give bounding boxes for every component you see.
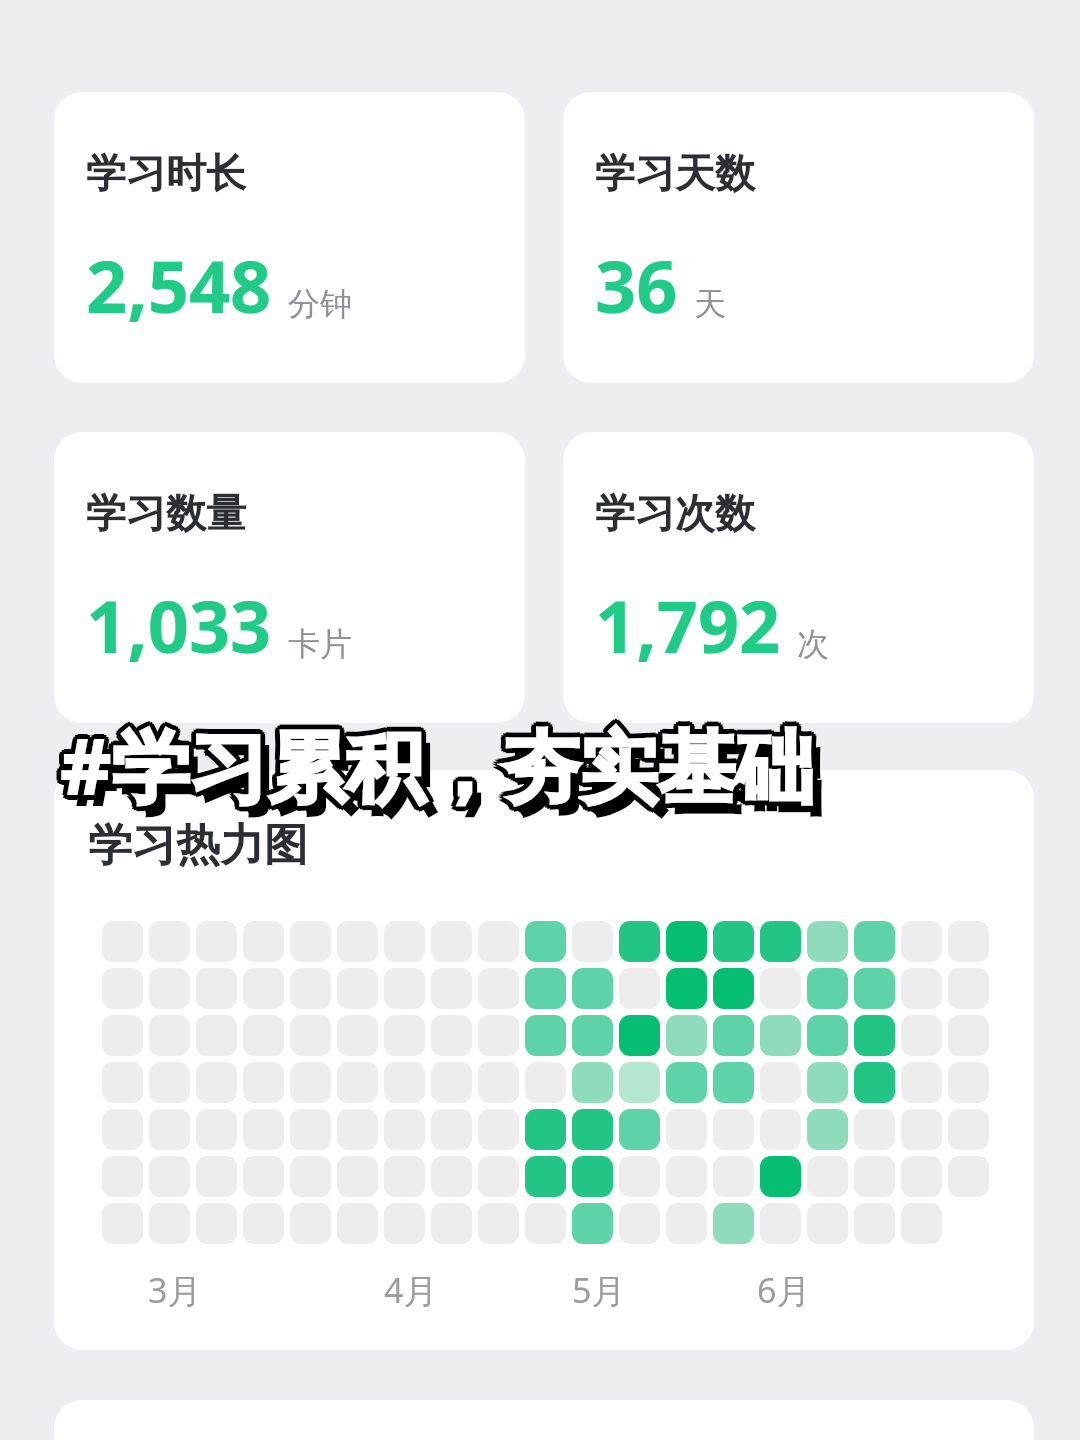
button[interactable]: 学习天数 [563, 92, 1034, 383]
button[interactable]: 学习数量 [54, 432, 525, 723]
button[interactable]: 学习时长 [54, 92, 525, 383]
staticText: 学习热力图 [88, 818, 308, 873]
staticText: 36 [595, 236, 678, 334]
staticText: 1,033 [86, 576, 272, 674]
staticText: 4月 [384, 1267, 438, 1313]
staticText: 学习次数 [595, 488, 755, 538]
staticText: 分钟 [288, 284, 352, 324]
staticText: 学习天数 [595, 148, 755, 198]
staticText: 5月 [572, 1267, 626, 1313]
staticText: 学习数量 [86, 488, 246, 538]
button[interactable]: 学习次数 [563, 432, 1034, 723]
staticText: 次 [797, 624, 829, 664]
other: #学习累积，夯实基础 [60, 712, 980, 822]
staticText: 2,548 [86, 236, 272, 334]
staticText: 学习时长 [86, 148, 246, 198]
button[interactable]: 学习热力图 [54, 770, 1034, 1350]
staticText: 天 [694, 284, 726, 324]
staticText: 1,792 [595, 576, 781, 674]
staticText: 卡片 [288, 624, 352, 664]
staticText: 3月 [148, 1267, 202, 1313]
staticText: 6月 [757, 1267, 811, 1313]
